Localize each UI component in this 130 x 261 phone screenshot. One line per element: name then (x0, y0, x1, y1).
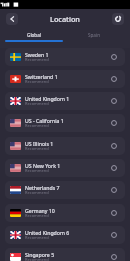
staticText: Recommend (25, 57, 49, 62)
staticText: Recommend (25, 101, 49, 106)
staticText: Spain (88, 32, 100, 38)
button[interactable]: Sweden 1 (5, 48, 125, 66)
staticText: US - California 1 (25, 117, 64, 124)
button[interactable]: Global (5, 28, 63, 48)
button[interactable]: Singapore 5 (5, 248, 125, 261)
staticText: Netherlands 7 (25, 184, 60, 191)
staticText: US Illinois 1 (25, 140, 54, 147)
staticText: United Kingdom 6 (25, 229, 70, 236)
button[interactable]: United Kingdom 6 (5, 226, 125, 244)
staticText: US New York 1 (25, 162, 61, 169)
button[interactable]: Germany 10 (5, 204, 125, 222)
staticText: Recommend (25, 123, 49, 128)
button[interactable]: US New York 1 (5, 159, 125, 177)
button[interactable]: Back (6, 13, 18, 25)
staticText: Sweden 1 (25, 51, 49, 58)
staticText: Recommend (25, 168, 49, 173)
staticText: Location (50, 14, 80, 24)
button[interactable]: Spain (63, 28, 125, 48)
button[interactable]: Refresh (112, 13, 124, 25)
staticText: Recommend (25, 146, 49, 151)
button[interactable]: US - California 1 (5, 114, 125, 132)
staticText: Recommend (25, 190, 49, 195)
staticText: United Kingdom 1 (25, 95, 70, 102)
button[interactable]: Switzerland 1 (5, 70, 125, 88)
staticText: Singapore 5 (25, 251, 55, 258)
staticText: Recommend (25, 213, 49, 218)
staticText: Germany 10 (25, 207, 55, 214)
staticText: Recommend (25, 79, 49, 84)
staticText: Recommend (25, 257, 49, 261)
button[interactable]: US Illinois 1 (5, 137, 125, 155)
staticText: Recommend (25, 235, 49, 240)
staticText: Switzerland 1 (25, 73, 58, 80)
staticText: Global (27, 32, 41, 38)
button[interactable]: United Kingdom 1 (5, 92, 125, 110)
button[interactable]: Netherlands 7 (5, 181, 125, 199)
